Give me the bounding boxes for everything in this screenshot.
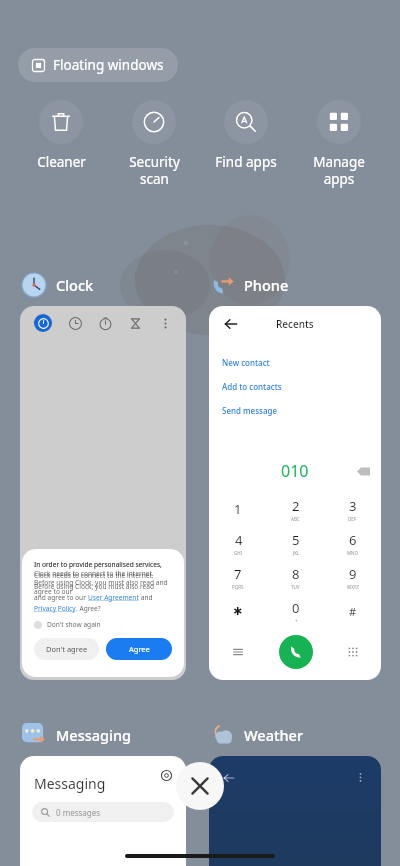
staticText: Clock needs to connect to the internet.: [34, 571, 154, 580]
button[interactable]: New contact: [209, 350, 381, 374]
button[interactable]: Agree: [106, 638, 172, 660]
button[interactable]: Clock: [22, 272, 94, 298]
button[interactable]: In order to provide personalised service…: [20, 306, 186, 680]
staticText: TUV: [291, 584, 300, 590]
button[interactable]: 9: [324, 560, 381, 594]
button[interactable]: ✱: [209, 594, 267, 628]
staticText: JKL: [293, 550, 300, 556]
staticText: Floating windows: [53, 56, 164, 74]
button[interactable]: 3: [324, 492, 381, 526]
button[interactable]: Security scan: [112, 100, 196, 188]
staticText: 4: [235, 531, 243, 549]
staticText: Find apps: [215, 153, 277, 171]
button[interactable]: 2: [267, 492, 324, 526]
button[interactable]: More options: [353, 770, 367, 784]
staticText: Agree: [129, 644, 150, 654]
staticText: Messaging: [34, 774, 106, 793]
staticText: #: [349, 604, 357, 619]
staticText: In order to provide personalised service…: [34, 560, 162, 569]
staticText: WXYZ: [347, 584, 359, 590]
button[interactable]: Phone: [210, 272, 289, 298]
button[interactable]: Call: [279, 635, 313, 669]
button[interactable]: Don't show again: [34, 620, 101, 629]
button[interactable]: 7: [209, 560, 267, 594]
staticText: and agree to our: [34, 593, 88, 602]
button[interactable]: Add to contacts: [209, 374, 381, 398]
button[interactable]: Messaging: [20, 756, 186, 866]
staticText: Send message: [222, 405, 278, 416]
staticText: Recents: [276, 317, 314, 331]
button[interactable]: Back: [209, 306, 381, 680]
button[interactable]: 0: [267, 594, 324, 628]
button[interactable]: 6: [324, 526, 381, 560]
button[interactable]: Privacy Policy: [34, 604, 76, 613]
staticText: ABC: [291, 516, 300, 522]
staticText: Phone: [244, 275, 289, 295]
button[interactable]: #: [324, 594, 381, 628]
staticText: 1: [234, 500, 242, 518]
button[interactable]: 4: [209, 526, 267, 560]
staticText: 9: [349, 565, 357, 583]
staticText: Weather: [244, 725, 304, 745]
button[interactable]: 0 messages: [32, 802, 174, 822]
staticText: 7: [234, 565, 242, 583]
staticText: 0 messages: [56, 807, 101, 818]
button[interactable]: Don't agree: [34, 638, 99, 660]
staticText: 2: [292, 497, 300, 515]
button[interactable]: Weather: [210, 722, 304, 748]
staticText: Don't agree: [46, 644, 88, 654]
staticText: Messaging: [56, 725, 132, 745]
button[interactable]: Menu: [209, 628, 267, 676]
button[interactable]: Cleaner: [19, 100, 103, 171]
staticText: DEF: [348, 516, 357, 522]
button[interactable]: Close: [176, 762, 224, 810]
button[interactable]: Manage apps: [297, 100, 381, 188]
staticText: 3: [349, 497, 357, 515]
staticText: ✱: [233, 605, 243, 618]
staticText: . Agree?: [76, 604, 101, 613]
button[interactable]: Send message: [209, 398, 381, 422]
staticText: Manage apps: [313, 153, 365, 188]
staticText: +: [295, 618, 298, 624]
staticText: GHI: [234, 550, 243, 556]
button[interactable]: Backspace: [355, 463, 371, 479]
button[interactable]: Keypad: [324, 628, 381, 676]
staticText: PQRS: [232, 584, 244, 590]
staticText: 8: [292, 565, 300, 583]
button[interactable]: Back: [221, 314, 241, 334]
staticText: In order to provide personalised service…: [34, 560, 172, 596]
staticText: Security scan: [129, 153, 180, 188]
button[interactable]: Find apps: [204, 100, 288, 171]
staticText: Don't show again: [47, 620, 101, 629]
button[interactable]: More options: [209, 756, 381, 866]
staticText: Clock: [56, 275, 94, 295]
staticText: 0: [292, 599, 300, 617]
staticText: 010: [281, 460, 309, 482]
button[interactable]: Messaging: [22, 722, 132, 748]
staticText: Cleaner: [37, 153, 86, 171]
button[interactable]: Floating windows: [18, 48, 178, 82]
button[interactable]: 5: [267, 526, 324, 560]
staticText: New contact: [222, 357, 270, 368]
staticText: Add to contacts: [222, 381, 282, 392]
button[interactable]: 8: [267, 560, 324, 594]
staticText: 5: [292, 531, 300, 549]
button[interactable]: 1: [209, 492, 267, 526]
staticText: 6: [349, 531, 357, 549]
button[interactable]: User Agreement: [88, 593, 139, 602]
staticText: and: [139, 593, 153, 602]
staticText: Before using Clock, you must also read: [34, 582, 155, 591]
staticText: MNO: [347, 550, 359, 556]
